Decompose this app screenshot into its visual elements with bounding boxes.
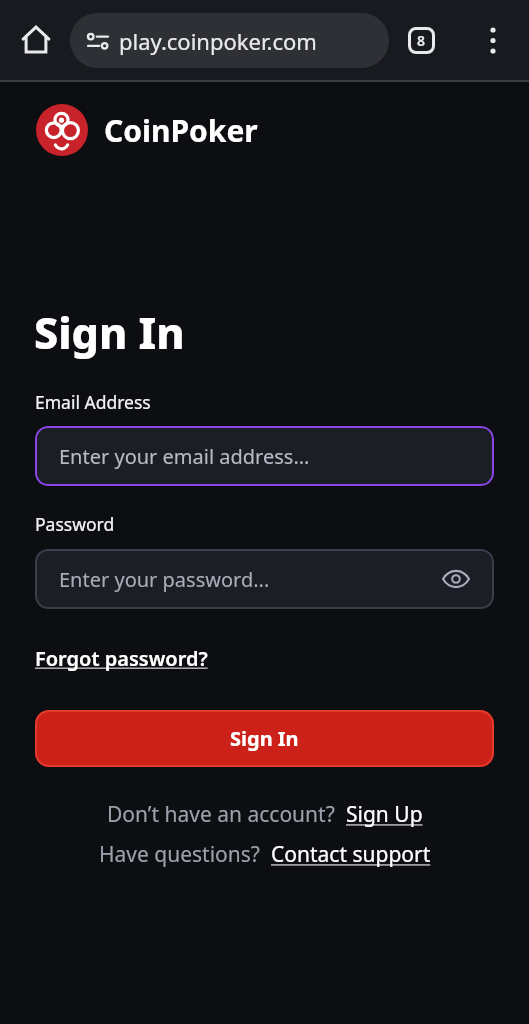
- button[interactable]: Enter your password...: [35, 549, 494, 609]
- staticText: Password: [35, 512, 115, 536]
- staticText: Email Address: [35, 390, 151, 414]
- button[interactable]: [482, 24, 504, 58]
- staticText: play.coinpoker.com: [119, 26, 317, 56]
- staticText: Sign In: [230, 725, 299, 752]
- button[interactable]: play.coinpoker.com: [70, 13, 389, 68]
- button[interactable]: [21, 25, 51, 55]
- staticText: Sign In: [34, 303, 185, 362]
- button[interactable]: 8: [408, 27, 435, 54]
- staticText: Have questions?: [99, 840, 271, 869]
- button[interactable]: Forgot password?: [35, 645, 208, 672]
- staticText: CoinPoker: [104, 110, 258, 151]
- staticText: Don’t have an account?: [107, 800, 346, 829]
- staticText: Enter your password...: [59, 566, 270, 593]
- staticText: 8: [417, 31, 426, 50]
- button[interactable]: Contact support: [271, 840, 431, 869]
- button[interactable]: Sign In: [35, 710, 494, 767]
- button[interactable]: Enter your email address...: [35, 426, 494, 486]
- staticText: Enter your email address...: [59, 443, 310, 470]
- button[interactable]: Sign Up: [346, 800, 423, 829]
